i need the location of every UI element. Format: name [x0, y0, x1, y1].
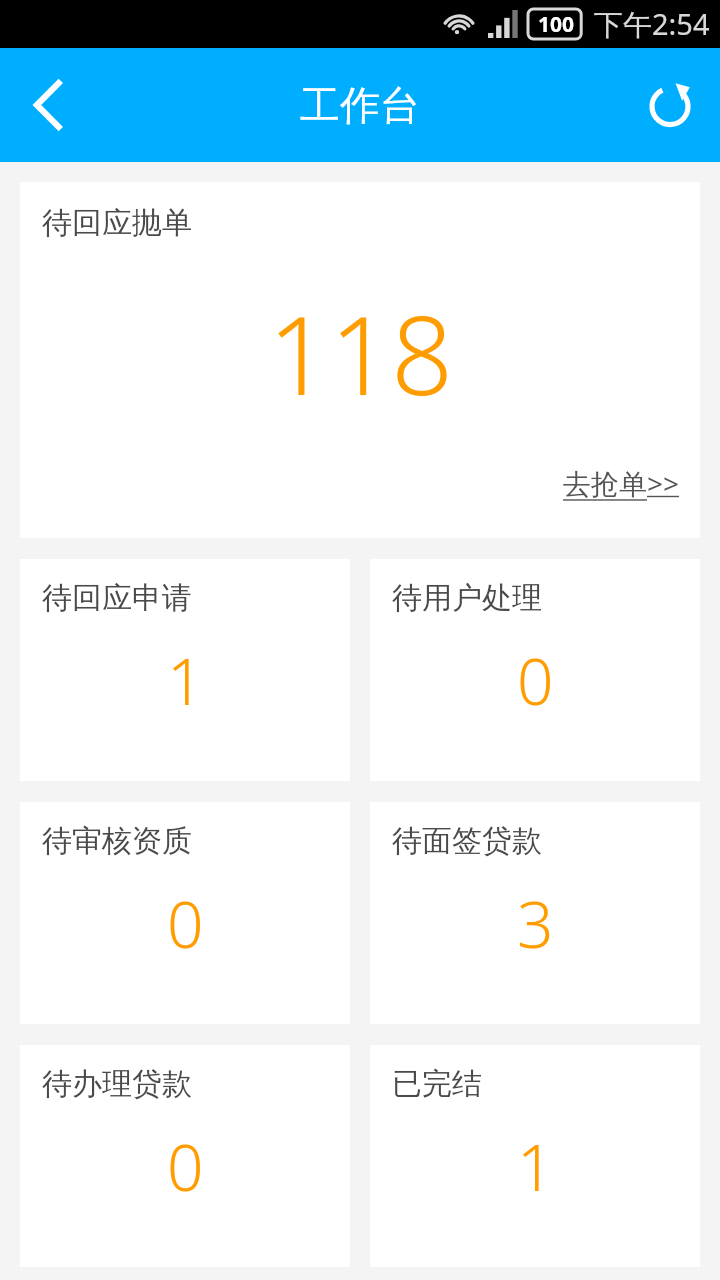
button[interactable]: 待回应抛单: [20, 182, 700, 538]
staticText: 待面签贷款: [392, 822, 542, 860]
staticText: 工作台: [300, 80, 420, 130]
staticText: 1: [167, 637, 204, 724]
staticText: 0: [167, 880, 204, 967]
button[interactable]: Refresh: [620, 48, 720, 162]
staticText: 下午2:54: [594, 4, 710, 44]
button[interactable]: 待回应申请: [20, 559, 350, 781]
staticText: 待回应申请: [42, 579, 192, 617]
button[interactable]: 去抢单>>: [563, 464, 680, 502]
button[interactable]: Back: [0, 48, 96, 162]
staticText: 0: [517, 637, 554, 724]
staticText: 1: [517, 1123, 554, 1210]
staticText: 0: [167, 1123, 204, 1210]
staticText: 待用户处理: [392, 579, 542, 617]
button[interactable]: 待审核资质: [20, 802, 350, 1024]
button[interactable]: 已完结: [370, 1045, 700, 1267]
button[interactable]: 待用户处理: [370, 559, 700, 781]
staticText: 100: [538, 10, 575, 39]
staticText: 待办理贷款: [42, 1065, 192, 1103]
staticText: 3: [517, 880, 554, 967]
staticText: 118: [268, 280, 454, 427]
button[interactable]: 待办理贷款: [20, 1045, 350, 1267]
staticText: 已完结: [392, 1065, 482, 1103]
staticText: 待审核资质: [42, 822, 192, 860]
staticText: 待回应抛单: [42, 204, 192, 242]
button[interactable]: 待面签贷款: [370, 802, 700, 1024]
